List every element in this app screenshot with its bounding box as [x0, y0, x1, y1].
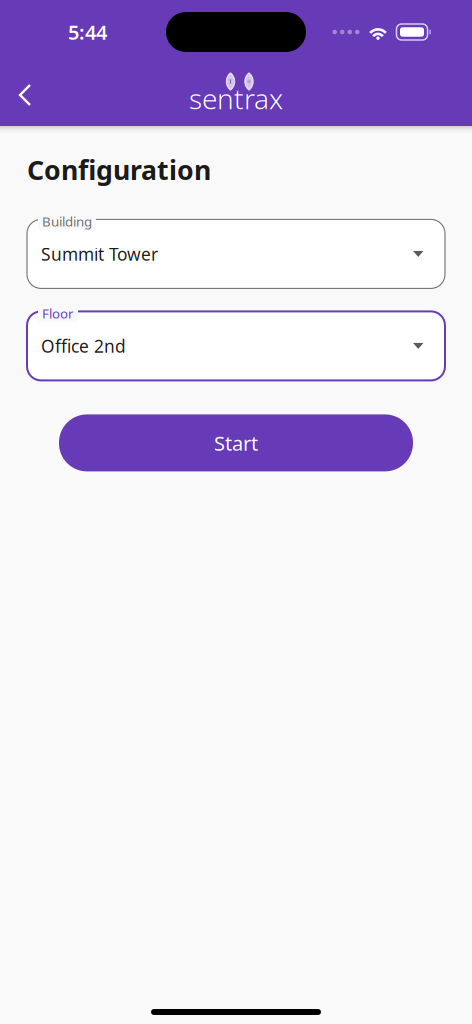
button[interactable]: Summit Tower: [27, 219, 445, 288]
staticText: Office 2nd: [41, 334, 126, 357]
staticText: Start: [214, 430, 258, 456]
staticText: 5:44: [68, 19, 107, 45]
staticText: Floor: [42, 304, 74, 322]
staticText: Building: [42, 212, 92, 230]
staticText: Configuration: [27, 152, 211, 187]
button[interactable]: Office 2nd: [27, 311, 445, 380]
button[interactable]: Start: [59, 414, 413, 471]
button[interactable]: Back: [0, 71, 41, 119]
staticText: Summit Tower: [41, 242, 158, 265]
staticText: sentrax: [189, 80, 283, 117]
